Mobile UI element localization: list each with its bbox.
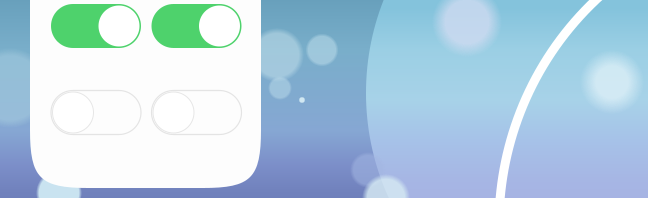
button[interactable]: Switch off (151, 90, 241, 134)
button[interactable]: Switch off (51, 90, 141, 134)
button[interactable]: Switch on (51, 4, 141, 48)
button[interactable]: Switch on (151, 4, 241, 48)
